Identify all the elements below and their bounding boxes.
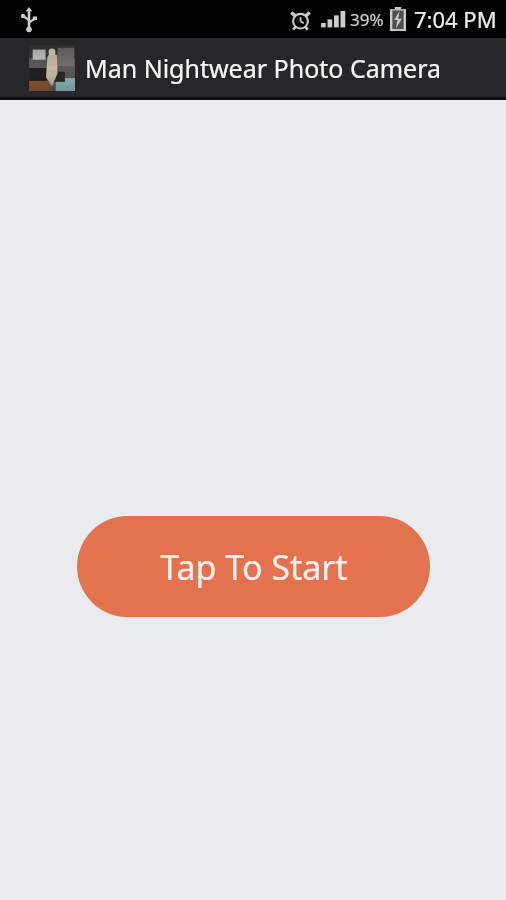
- button[interactable]: App icon: [29, 45, 442, 91]
- staticText: Man Nightwear Photo Camera: [85, 51, 442, 85]
- staticText: Tap To Start: [160, 544, 348, 590]
- staticText: 39%: [350, 8, 384, 31]
- button[interactable]: Tap To Start: [77, 516, 430, 617]
- staticText: 7:04 PM: [414, 4, 497, 34]
- other: USB connected: [19, 7, 39, 32]
- other: App icon: [29, 45, 75, 91]
